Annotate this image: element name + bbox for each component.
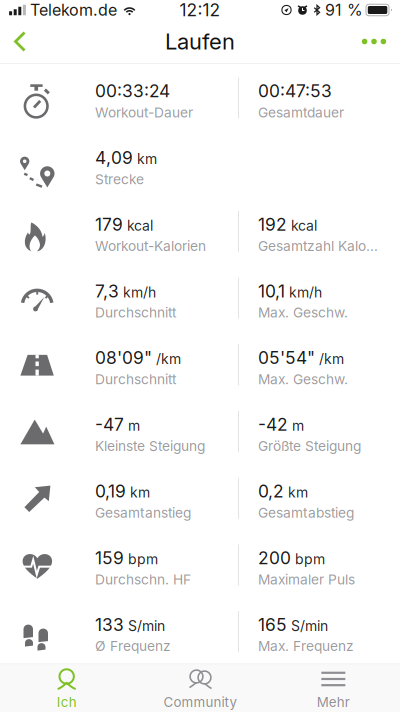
staticText: Telekom.de <box>30 0 117 20</box>
staticText: bpm <box>128 551 158 567</box>
staticText: m <box>292 417 304 434</box>
staticText: Größte Steigung <box>258 438 361 454</box>
staticText: 10,1 <box>258 281 285 302</box>
staticText: 00:33:24 <box>95 80 170 101</box>
staticText: m <box>128 417 140 434</box>
staticText: km/h <box>123 284 156 301</box>
staticText: -47 <box>95 414 124 435</box>
staticText: km <box>137 150 157 167</box>
staticText: 159 <box>95 547 124 568</box>
staticText: Gesamtzahl Kalo… <box>258 238 378 254</box>
staticText: 00:47:53 <box>258 80 332 101</box>
staticText: Laufen <box>165 28 235 55</box>
staticText: 200 <box>258 547 291 568</box>
staticText: km <box>288 484 308 501</box>
staticText: Durchschn. HF <box>95 571 191 588</box>
staticText: km <box>130 484 150 501</box>
button[interactable]: Mehr <box>267 660 400 712</box>
button[interactable]: Back <box>0 19 43 63</box>
staticText: km/h <box>289 284 322 301</box>
staticText: Community <box>163 694 236 710</box>
staticText: 4,09 <box>95 147 133 168</box>
staticText: 133 <box>95 614 124 635</box>
button[interactable]: More options <box>348 19 400 63</box>
staticText: Workout-Dauer <box>95 104 193 121</box>
staticText: 08'09" <box>95 347 152 368</box>
staticText: kcal <box>291 217 317 234</box>
staticText: Max. Geschw. <box>258 371 348 388</box>
staticText: /km <box>156 350 181 367</box>
staticText: -42 <box>258 414 288 435</box>
staticText: Ich <box>57 694 77 710</box>
staticText: Gesamtanstieg <box>95 504 191 521</box>
button[interactable]: Community <box>133 660 267 712</box>
staticText: 192 <box>258 214 287 235</box>
staticText: Gesamtabstieg <box>258 504 354 521</box>
staticText: Max. Frequenz <box>258 638 354 654</box>
staticText: Kleinste Steigung <box>95 438 205 454</box>
staticText: Strecke <box>95 171 144 187</box>
staticText: Gesamtdauer <box>258 104 344 121</box>
button[interactable]: Ich <box>0 660 133 712</box>
staticText: 179 <box>95 214 123 235</box>
staticText: bpm <box>295 551 325 567</box>
staticText: Workout-Kalorien <box>95 238 206 254</box>
staticText: kcal <box>127 217 153 234</box>
staticText: 165 <box>258 614 287 635</box>
staticText: 91 % <box>325 0 363 20</box>
staticText: Durchschnitt <box>95 371 176 388</box>
staticText: Maximaler Puls <box>258 571 355 588</box>
staticText: 0,19 <box>95 481 126 502</box>
staticText: S/min <box>128 617 165 634</box>
staticText: Mehr <box>317 694 350 710</box>
staticText: Durchschnitt <box>95 304 176 321</box>
staticText: Max. Geschw. <box>258 304 348 321</box>
staticText: Ø Frequenz <box>95 638 171 654</box>
staticText: 12:12 <box>179 0 220 20</box>
staticText: 05'54" <box>258 347 315 368</box>
staticText: /km <box>319 350 344 367</box>
staticText: 0,2 <box>258 481 284 502</box>
staticText: S/min <box>291 617 328 634</box>
staticText: 7,3 <box>95 281 119 302</box>
